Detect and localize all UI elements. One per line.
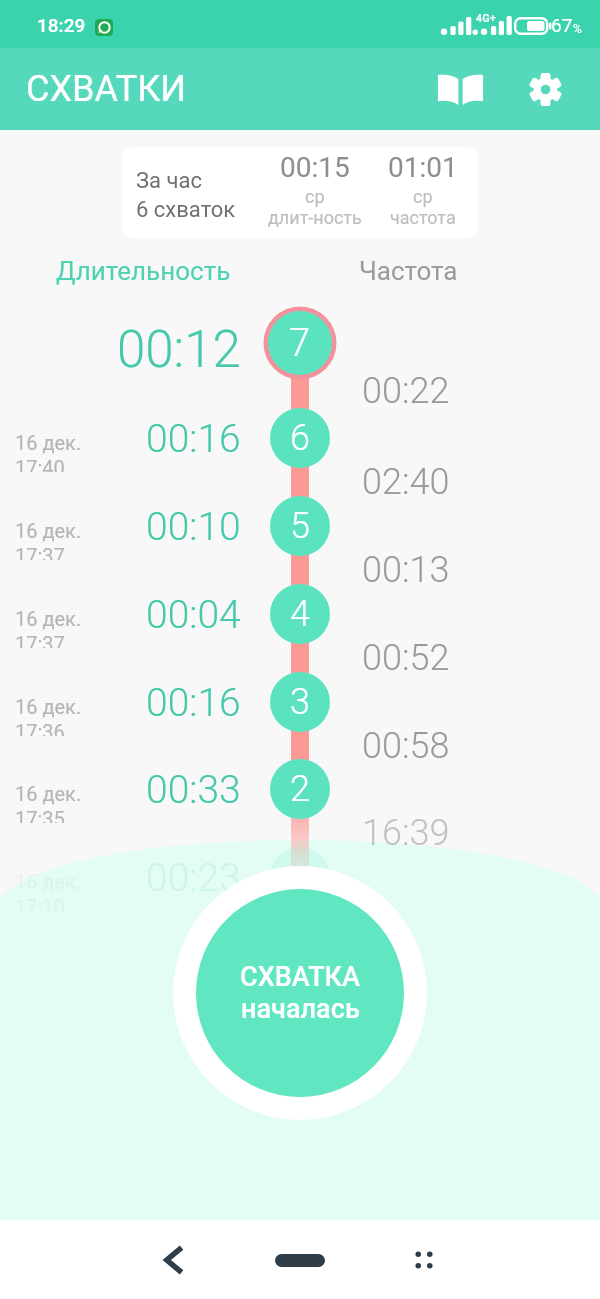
button[interactable]: 2: [260, 761, 340, 817]
staticText: 16 дек.: [15, 519, 82, 542]
staticText: 16 дек.: [15, 870, 82, 893]
staticText: 00:10: [146, 504, 241, 550]
staticText: 17:40: [15, 456, 65, 472]
button[interactable]: Recent apps: [395, 1231, 453, 1289]
staticText: 17:36: [15, 720, 65, 736]
staticText: 16 дек.: [15, 782, 82, 805]
button[interactable]: СХВАТКА: [196, 889, 404, 1097]
staticText: 6: [290, 417, 310, 459]
button[interactable]: 4: [260, 586, 340, 642]
staticText: 17:37: [15, 632, 65, 648]
staticText: %: [573, 22, 582, 36]
staticText: 16 дек.: [15, 695, 82, 718]
staticText: 3: [290, 681, 310, 723]
staticText: 17:37: [15, 544, 65, 560]
staticText: 17:10: [15, 895, 65, 911]
staticText: ср: [413, 186, 433, 207]
staticText: 4: [290, 593, 310, 635]
button[interactable]: 5: [260, 498, 340, 554]
staticText: 00:12: [117, 320, 241, 368]
staticText: 00:16: [146, 680, 241, 726]
staticText: 00:15: [280, 151, 350, 184]
staticText: Длительность: [56, 256, 231, 286]
staticText: длит-ность: [268, 207, 362, 228]
staticText: началась: [241, 993, 360, 1025]
staticText: 4G+: [476, 12, 496, 25]
staticText: Частота: [359, 256, 458, 286]
staticText: 2: [290, 768, 310, 810]
staticText: 16:39: [362, 812, 450, 854]
staticText: 00:52: [362, 637, 450, 679]
staticText: 5: [290, 505, 310, 547]
staticText: 16 дек.: [15, 431, 82, 454]
staticText: 00:16: [146, 416, 241, 462]
staticText: 67: [551, 14, 573, 36]
button[interactable]: 3: [260, 674, 340, 730]
staticText: 00:58: [362, 725, 450, 767]
staticText: 00:23: [146, 855, 241, 901]
staticText: 00:13: [362, 549, 450, 591]
staticText: СХВАТКА: [240, 961, 360, 993]
staticText: 18:29: [37, 14, 86, 36]
staticText: ср: [305, 186, 325, 207]
staticText: 01:01: [388, 151, 458, 184]
staticText: За час: [136, 168, 202, 194]
button[interactable]: 7: [260, 315, 340, 371]
button[interactable]: Home: [271, 1231, 329, 1289]
staticText: 6 схваток: [136, 197, 236, 223]
button[interactable]: 1: [260, 849, 340, 905]
staticText: 16 дек.: [15, 607, 82, 630]
staticText: 02:40: [362, 461, 450, 503]
staticText: 17:35: [15, 807, 65, 823]
button[interactable]: За час: [122, 147, 478, 238]
staticText: 7: [289, 321, 311, 366]
staticText: частота: [390, 207, 456, 228]
staticText: 00:22: [362, 370, 450, 412]
button[interactable]: 6: [260, 410, 340, 466]
staticText: СХВАТКИ: [26, 68, 186, 110]
button[interactable]: Back: [145, 1231, 203, 1289]
staticText: 00:33: [146, 767, 241, 813]
button[interactable]: Settings: [509, 53, 581, 125]
button[interactable]: Guide: [424, 53, 496, 125]
staticText: 1: [290, 856, 310, 898]
staticText: 00:04: [146, 592, 241, 638]
